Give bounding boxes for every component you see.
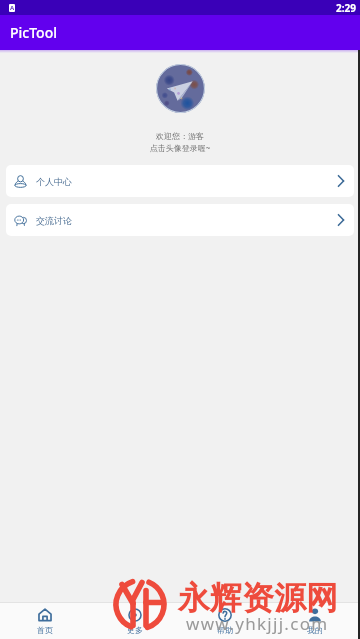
staticText: 2:29: [336, 1, 356, 15]
button[interactable]: 更多: [90, 603, 180, 639]
staticText: 更多: [127, 625, 143, 635]
staticText: 个人中心: [36, 176, 72, 187]
staticText: 点击头像登录喔~: [0, 142, 360, 153]
staticText: 首页: [37, 625, 53, 635]
button[interactable]: 首页: [0, 603, 90, 639]
button[interactable]: 交流讨论: [6, 204, 354, 236]
button[interactable]: 个人中心: [6, 165, 354, 197]
staticText: 交流讨论: [36, 215, 72, 226]
staticText: PicTool: [10, 23, 57, 42]
staticText: 帮助: [217, 625, 233, 635]
staticText: 永辉资源网: [178, 578, 338, 618]
button[interactable]: 帮助: [180, 603, 270, 639]
staticText: 欢迎您：游客: [0, 131, 360, 141]
staticText: A: [10, 4, 15, 12]
staticText: 我的: [307, 625, 323, 635]
button[interactable]: 头像登录: [156, 64, 205, 113]
button[interactable]: 我的: [270, 603, 360, 639]
staticText: www.yhkjjj.com: [186, 612, 329, 635]
